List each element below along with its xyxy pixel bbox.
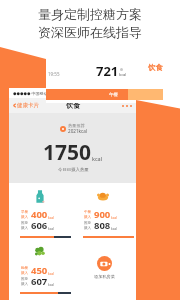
staticText: 1750 (43, 138, 92, 167)
staticText: 摄入 (21, 271, 29, 276)
staticText: 午餐 (84, 210, 92, 215)
button[interactable]: 添加私房菜 (72, 239, 136, 295)
staticText: kcal (119, 72, 127, 77)
staticText: 摄入 (84, 226, 92, 231)
staticText: kcal (48, 283, 54, 287)
button[interactable]: 早餐 (9, 183, 72, 239)
staticText: kcal (48, 216, 54, 220)
staticText: 721 (96, 62, 119, 80)
staticText: 606 (31, 219, 48, 232)
staticText: 饮食 (148, 63, 163, 72)
staticText: kcal (48, 227, 54, 231)
staticText: 摄入 (84, 215, 92, 220)
staticText: kcal (111, 216, 117, 220)
staticText: 摄入 (21, 282, 29, 287)
staticText: 400 (31, 208, 48, 221)
staticText: 450 (31, 264, 48, 277)
staticText: 晚餐 (21, 266, 29, 271)
staticText: 推荐 (21, 277, 29, 282)
button[interactable]: 晚餐 (9, 239, 72, 295)
staticText: 推荐 (84, 221, 92, 226)
staticText: 607 (31, 275, 48, 288)
staticText: kcal (48, 272, 54, 276)
button[interactable]: 午餐 (72, 183, 136, 239)
staticText: 热量推荐 (68, 123, 85, 128)
staticText: 量身定制控糖方案 (38, 6, 142, 22)
staticText: 19:55 (48, 71, 60, 77)
button[interactable]: 健康卡片 (12, 102, 39, 109)
staticText: kcal (111, 227, 117, 231)
staticText: 健康卡片 (17, 102, 39, 109)
staticText: 摄入 (21, 226, 29, 231)
staticText: 2021kcal (68, 128, 87, 134)
staticText: 推荐 (21, 221, 29, 226)
staticText: 早餐 (21, 210, 29, 215)
staticText: 资深医师在线指导 (38, 24, 142, 40)
button[interactable]: More (122, 105, 132, 107)
staticText: 摄入 (21, 215, 29, 220)
staticText: 今日已摄入热量 (58, 167, 89, 173)
staticText: ●●●●● 中国移动 (13, 91, 48, 96)
staticText: 808 (94, 219, 111, 232)
staticText: 午餐 (109, 92, 118, 98)
staticText: 饮食 (66, 101, 80, 110)
staticText: kcal (92, 155, 103, 162)
staticText: 添加私房菜 (94, 274, 115, 279)
staticText: 900 (94, 208, 111, 221)
